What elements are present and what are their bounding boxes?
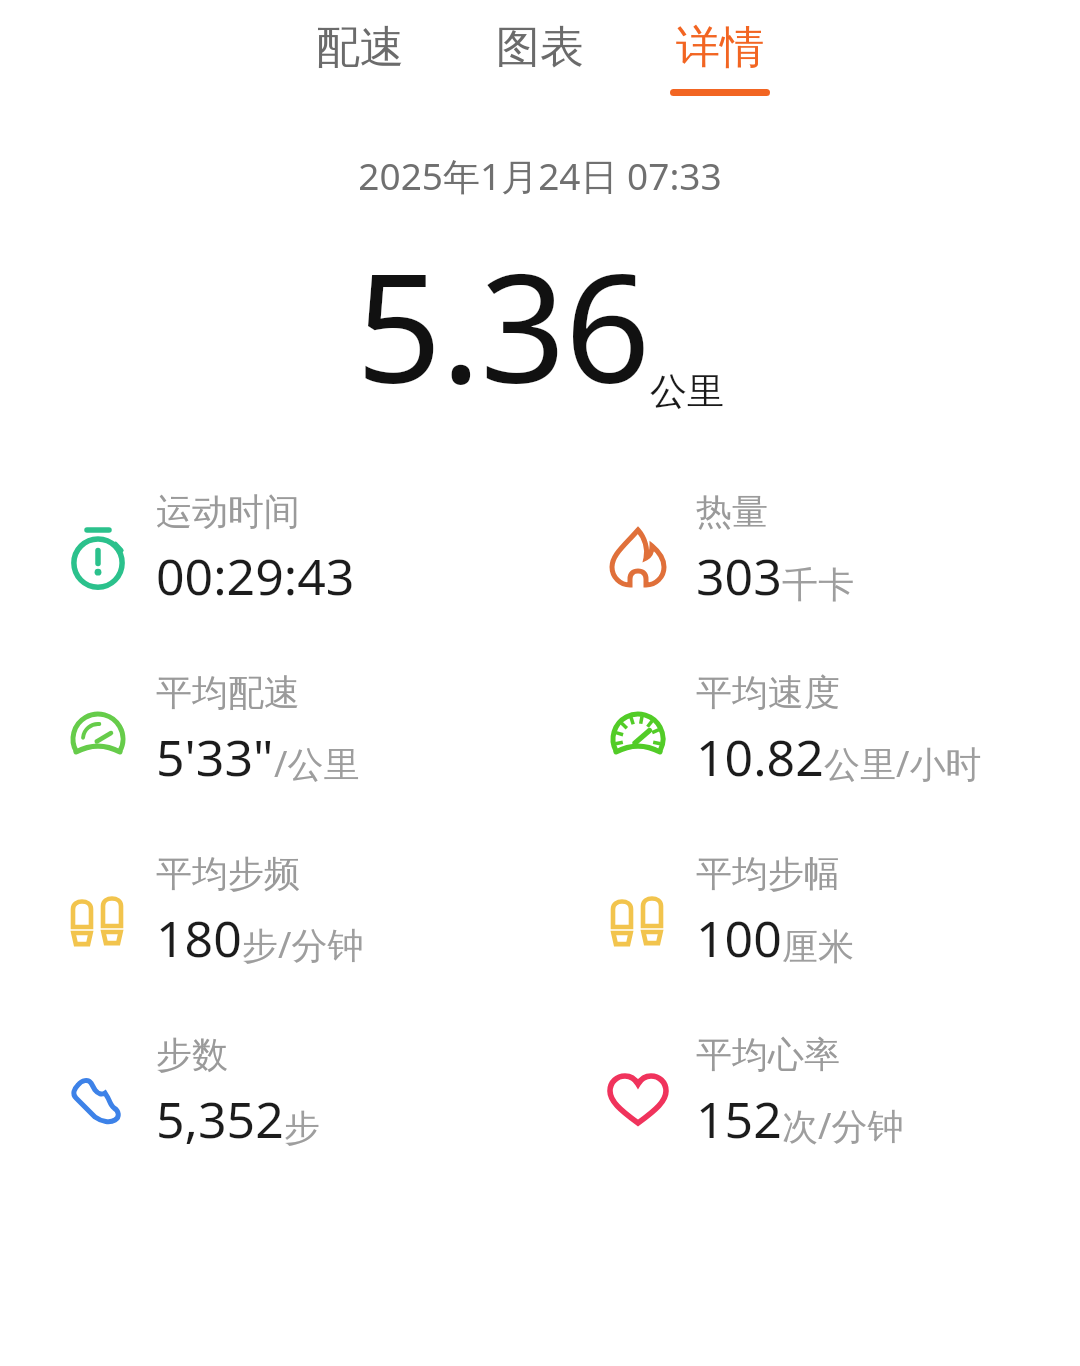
button[interactable]: 图表 (450, 14, 630, 102)
button[interactable]: 步频 (0, 851, 540, 972)
staticText: 180 (156, 904, 242, 972)
staticText: 152 (696, 1085, 782, 1153)
other: 运动时间 (62, 522, 134, 594)
button[interactable]: 平均心率 (540, 1032, 1080, 1153)
staticText: 平均步频 (156, 851, 300, 896)
staticText: 5.36 (356, 223, 650, 427)
staticText: 平均步幅 (696, 851, 840, 896)
staticText: 千卡 (782, 562, 854, 607)
staticText: 5'33" (156, 723, 274, 791)
staticText: 详情 (676, 20, 764, 75)
staticText: 平均心率 (696, 1032, 840, 1077)
other: 平均配速 (62, 703, 134, 775)
staticText: 热量 (696, 489, 768, 534)
staticText: 303 (696, 542, 782, 610)
staticText: 厘米 (782, 924, 854, 969)
button[interactable]: 配速 (270, 14, 450, 102)
staticText: 10.82 (696, 723, 824, 791)
other: 步频 (62, 884, 134, 956)
staticText: 2025年1月24日 07:33 (0, 150, 1080, 201)
staticText: 5,352 (156, 1085, 284, 1153)
other: 平均心率 (602, 1065, 674, 1137)
staticText: 步数 (156, 1032, 228, 1077)
button[interactable]: 热量 (540, 489, 1080, 610)
staticText: 图表 (496, 20, 584, 75)
other: 步数 (62, 1065, 134, 1137)
staticText: 次/分钟 (782, 1101, 904, 1150)
staticText: 配速 (316, 20, 404, 75)
staticText: 公里 (650, 368, 724, 415)
button[interactable]: 详情 (630, 14, 810, 102)
staticText: 100 (696, 904, 782, 972)
button[interactable]: 步频 (540, 851, 1080, 972)
staticText: 步 (284, 1105, 320, 1150)
button[interactable]: 步数 (0, 1032, 540, 1153)
other: 热量 (602, 522, 674, 594)
staticText: 平均配速 (156, 670, 300, 715)
staticText: 平均速度 (696, 670, 840, 715)
other: 平均速度 (602, 703, 674, 775)
staticText: 运动时间 (156, 489, 300, 534)
button[interactable]: 运动时间 (0, 489, 540, 610)
other: 步频 (602, 884, 674, 956)
staticText: 步/分钟 (242, 920, 364, 969)
button[interactable]: 平均速度 (540, 670, 1080, 791)
staticText: /公里 (274, 739, 360, 788)
staticText: 公里/小时 (824, 739, 982, 788)
staticText: 00:29:43 (156, 542, 355, 610)
button[interactable]: 平均配速 (0, 670, 540, 791)
